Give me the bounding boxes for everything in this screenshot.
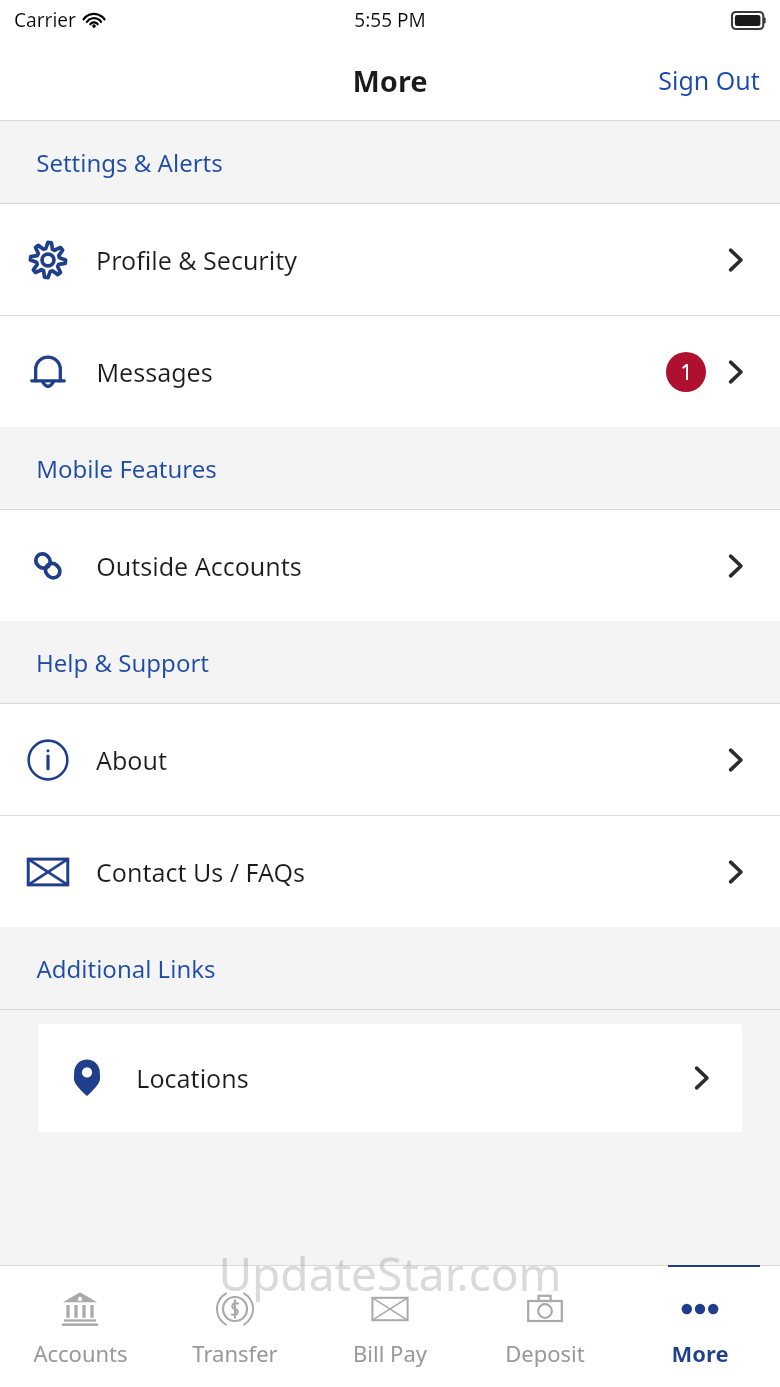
button[interactable]: Bill Pay: [315, 1280, 465, 1374]
staticText: UpdateStar.com: [218, 1242, 562, 1305]
staticText: 1: [680, 358, 693, 387]
other: Profile and Security: [26, 238, 70, 282]
button[interactable]: More: [625, 1280, 775, 1374]
other: Contact Us and FAQs: [25, 849, 71, 895]
staticText: Settings & Alerts: [36, 146, 223, 179]
button[interactable]: About: [0, 704, 780, 815]
staticText: Transfer: [192, 1338, 278, 1368]
button[interactable]: Contact Us and FAQs: [0, 816, 780, 927]
staticText: Help & Support: [36, 646, 209, 679]
staticText: Sign Out: [658, 63, 760, 97]
other: Outside Accounts: [26, 544, 70, 588]
staticText: More: [352, 61, 428, 100]
staticText: About: [96, 743, 167, 777]
button[interactable]: Profile and Security: [0, 204, 780, 315]
staticText: Deposit: [505, 1338, 585, 1368]
button[interactable]: Deposit: [470, 1280, 620, 1374]
button[interactable]: Sign Out: [638, 51, 780, 109]
other: More: [678, 1299, 722, 1319]
button[interactable]: Messages: [0, 316, 780, 427]
staticText: 5:55 PM: [354, 7, 426, 33]
staticText: Bill Pay: [353, 1338, 427, 1368]
staticText: Messages: [96, 355, 213, 389]
other: Locations: [67, 1058, 107, 1098]
other: Messages: [26, 350, 70, 394]
staticText: Carrier: [14, 7, 76, 33]
staticText: Outside Accounts: [96, 549, 302, 583]
staticText: Mobile Features: [36, 452, 217, 485]
staticText: Profile & Security: [96, 243, 297, 277]
button[interactable]: Transfer: [160, 1280, 310, 1374]
staticText: Additional Links: [36, 952, 216, 985]
button[interactable]: Outside Accounts: [0, 510, 780, 621]
staticText: Locations: [136, 1061, 249, 1095]
staticText: Contact Us / FAQs: [96, 855, 305, 889]
staticText: More: [671, 1338, 729, 1368]
other: About: [26, 738, 70, 782]
button[interactable]: Locations: [38, 1024, 742, 1132]
button[interactable]: Accounts: [5, 1280, 155, 1374]
staticText: Accounts: [33, 1338, 128, 1368]
